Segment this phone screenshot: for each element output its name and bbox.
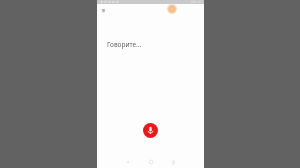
button[interactable]: Home bbox=[146, 157, 156, 167]
button[interactable]: Microphone bbox=[143, 123, 158, 138]
button[interactable]: Recents bbox=[168, 157, 178, 167]
staticText: Говорите... bbox=[107, 40, 142, 49]
button[interactable]: Back bbox=[123, 157, 133, 167]
button[interactable]: Menu bbox=[99, 6, 107, 14]
button[interactable]: Account bbox=[166, 3, 178, 15]
